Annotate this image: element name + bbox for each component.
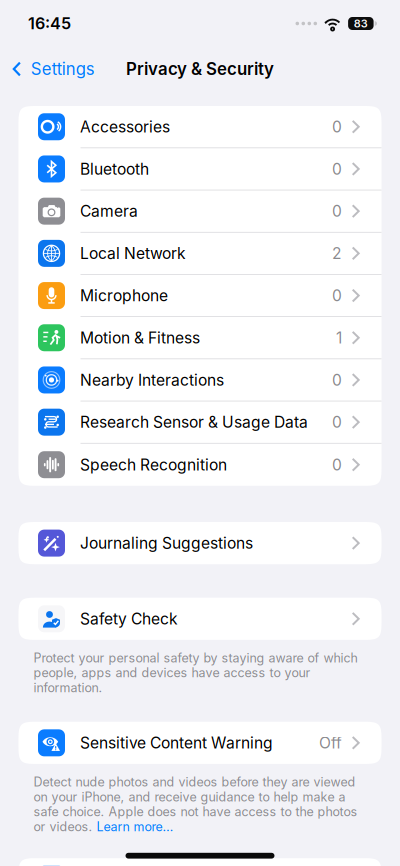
staticText: Speech Recognition bbox=[80, 455, 227, 474]
staticText: Sensitive Content Warning bbox=[80, 733, 273, 752]
staticText: safe choice. Apple does not have access … bbox=[33, 804, 357, 819]
button[interactable]: Accessories bbox=[18, 106, 381, 148]
staticText: 0 bbox=[332, 455, 342, 474]
staticText: 0 bbox=[332, 370, 342, 389]
button[interactable]: Speech Recognition bbox=[18, 444, 381, 486]
staticText: 0 bbox=[332, 202, 342, 221]
staticText: Research Sensor & Usage Data bbox=[80, 413, 308, 432]
button[interactable]: Camera bbox=[18, 190, 381, 233]
staticText: Safety Check bbox=[80, 609, 178, 628]
button[interactable]: Settings bbox=[0, 47, 105, 91]
staticText: Journaling Suggestions bbox=[80, 534, 253, 553]
staticText: Motion & Fitness bbox=[80, 328, 200, 347]
button[interactable]: Sensitive Content Warning bbox=[18, 722, 381, 764]
staticText: Bluetooth bbox=[80, 159, 149, 178]
staticText: 16:45 bbox=[28, 14, 71, 33]
staticText: 0 bbox=[332, 286, 342, 305]
staticText: Learn more… bbox=[96, 819, 173, 834]
button[interactable]: Analytics & Improvements bbox=[18, 858, 381, 866]
staticText: Privacy & Security bbox=[126, 59, 274, 79]
staticText: on your iPhone, and receive guidance to … bbox=[33, 789, 345, 804]
staticText: Nearby Interactions bbox=[80, 370, 224, 389]
staticText: 83 bbox=[354, 17, 368, 30]
staticText: 0 bbox=[332, 117, 342, 136]
button[interactable]: Microphone bbox=[18, 275, 381, 317]
staticText: Camera bbox=[80, 202, 138, 221]
staticText: 1 bbox=[336, 328, 342, 347]
staticText: 2 bbox=[332, 244, 342, 263]
staticText: information. bbox=[33, 680, 102, 695]
staticText: 0 bbox=[332, 413, 342, 432]
button[interactable]: Nearby Interactions bbox=[18, 359, 381, 401]
staticText: or videos. bbox=[33, 819, 92, 834]
staticText: Off bbox=[319, 733, 342, 752]
staticText: Settings bbox=[31, 59, 95, 79]
button[interactable]: Research Sensor & Usage Data bbox=[18, 401, 381, 444]
staticText: Accessories bbox=[80, 117, 170, 136]
staticText: Detect nude photos and videos before the… bbox=[33, 774, 355, 789]
button[interactable]: Motion & Fitness bbox=[18, 317, 381, 359]
button[interactable]: Local Network bbox=[18, 233, 381, 275]
staticText: Local Network bbox=[80, 244, 186, 263]
staticText: people, apps and devices have access to … bbox=[33, 665, 310, 680]
staticText: Microphone bbox=[80, 286, 168, 305]
staticText: Protect your personal safety by staying … bbox=[33, 650, 357, 665]
button[interactable]: Bluetooth bbox=[18, 148, 381, 190]
button[interactable]: Learn more… bbox=[96, 819, 173, 834]
staticText: 0 bbox=[332, 159, 342, 178]
button[interactable]: Safety Check bbox=[18, 598, 381, 640]
button[interactable]: Journaling Suggestions bbox=[18, 522, 381, 564]
